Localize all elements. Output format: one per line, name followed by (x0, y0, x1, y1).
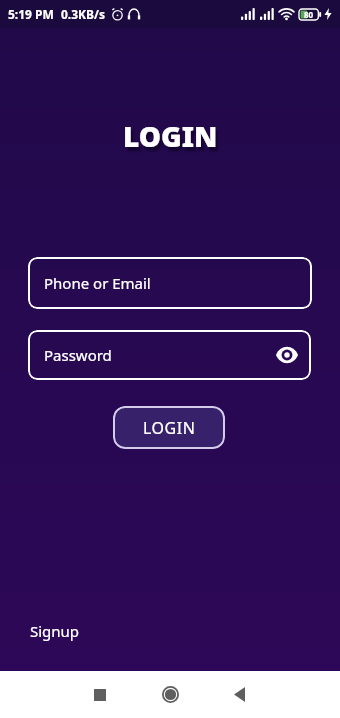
staticText: Signup (30, 621, 80, 641)
button[interactable]: Signup (22, 613, 88, 649)
button[interactable]: LOGIN (113, 406, 225, 449)
staticText: Phone or Email (44, 273, 151, 293)
button[interactable] (65, 671, 135, 718)
staticText: Password (44, 345, 112, 365)
staticText: 80 (304, 9, 314, 20)
staticText: LOGIN (143, 417, 196, 439)
button[interactable]: Phone or Email (28, 257, 312, 309)
button[interactable] (135, 671, 205, 718)
staticText: LOGIN (123, 117, 218, 155)
button[interactable] (205, 671, 275, 718)
button[interactable]: Password (28, 330, 311, 380)
staticText: 0.3KB/s (61, 6, 106, 22)
staticText: 5:19 PM (8, 6, 54, 22)
